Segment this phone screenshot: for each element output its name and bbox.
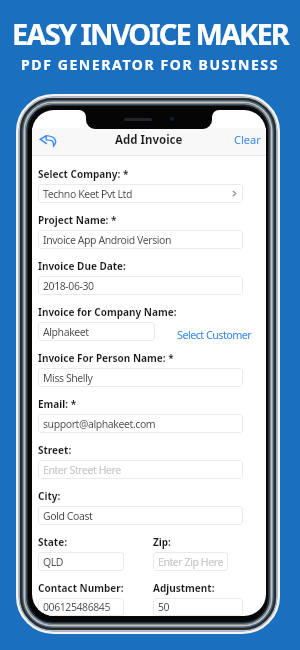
staticText: Gold Coast — [43, 509, 93, 523]
button[interactable]: Gold Coast — [38, 506, 243, 525]
staticText: Invoice App Android Version — [43, 233, 172, 247]
staticText: City: — [38, 489, 61, 503]
button[interactable]: Miss Shelly — [38, 368, 243, 387]
button[interactable]: Back — [36, 128, 60, 152]
button[interactable]: QLD — [38, 552, 124, 571]
staticText: Clear — [234, 132, 261, 147]
staticText: Miss Shelly — [43, 371, 93, 385]
button[interactable]: support@alphakeet.com — [38, 414, 243, 433]
staticText: Invoice Due Date: — [38, 259, 126, 273]
button[interactable]: 006125486845 — [38, 598, 124, 616]
staticText: QLD — [43, 555, 64, 569]
staticText: Enter Zip Here — [158, 555, 223, 569]
staticText: Add Invoice — [115, 132, 183, 148]
staticText: Street: — [38, 443, 72, 457]
button[interactable]: 2018-06-30 — [38, 276, 243, 295]
button[interactable]: Enter Street Here — [38, 460, 243, 479]
staticText: 50 — [158, 600, 170, 614]
button[interactable]: Invoice App Android Version — [38, 230, 243, 249]
staticText: PDF GENERATOR FOR BUSINESS — [0, 55, 300, 74]
staticText: Email: * — [38, 397, 77, 411]
staticText: Project Name: * — [38, 213, 117, 227]
staticText: Invoice for Company Name: — [38, 305, 177, 319]
staticText: Select Customer — [177, 327, 252, 342]
staticText: Adjustment: — [153, 581, 215, 595]
staticText: Alphakeet — [43, 325, 89, 339]
staticText: Contact Number: — [38, 581, 124, 595]
staticText: 2018-06-30 — [43, 279, 94, 293]
button[interactable]: Alphakeet — [38, 322, 155, 341]
staticText: 006125486845 — [43, 600, 111, 614]
staticText: State: — [38, 535, 67, 549]
button[interactable]: 50 — [153, 598, 243, 616]
staticText: Enter Street Here — [43, 463, 121, 477]
staticText: Techno Keet Pvt Ltd — [43, 187, 132, 201]
button[interactable]: Techno Keet Pvt Ltd — [38, 184, 243, 203]
button[interactable]: Enter Zip Here — [153, 552, 228, 571]
staticText: Zip: — [153, 535, 171, 549]
staticText: EASY INVOICE MAKER — [0, 14, 300, 53]
staticText: Select Company: * — [38, 167, 129, 181]
staticText: Invoice For Person Name: * — [38, 351, 174, 365]
button[interactable]: Clear — [234, 132, 261, 147]
staticText: support@alphakeet.com — [43, 417, 156, 431]
button[interactable]: Select Customer — [177, 327, 252, 342]
